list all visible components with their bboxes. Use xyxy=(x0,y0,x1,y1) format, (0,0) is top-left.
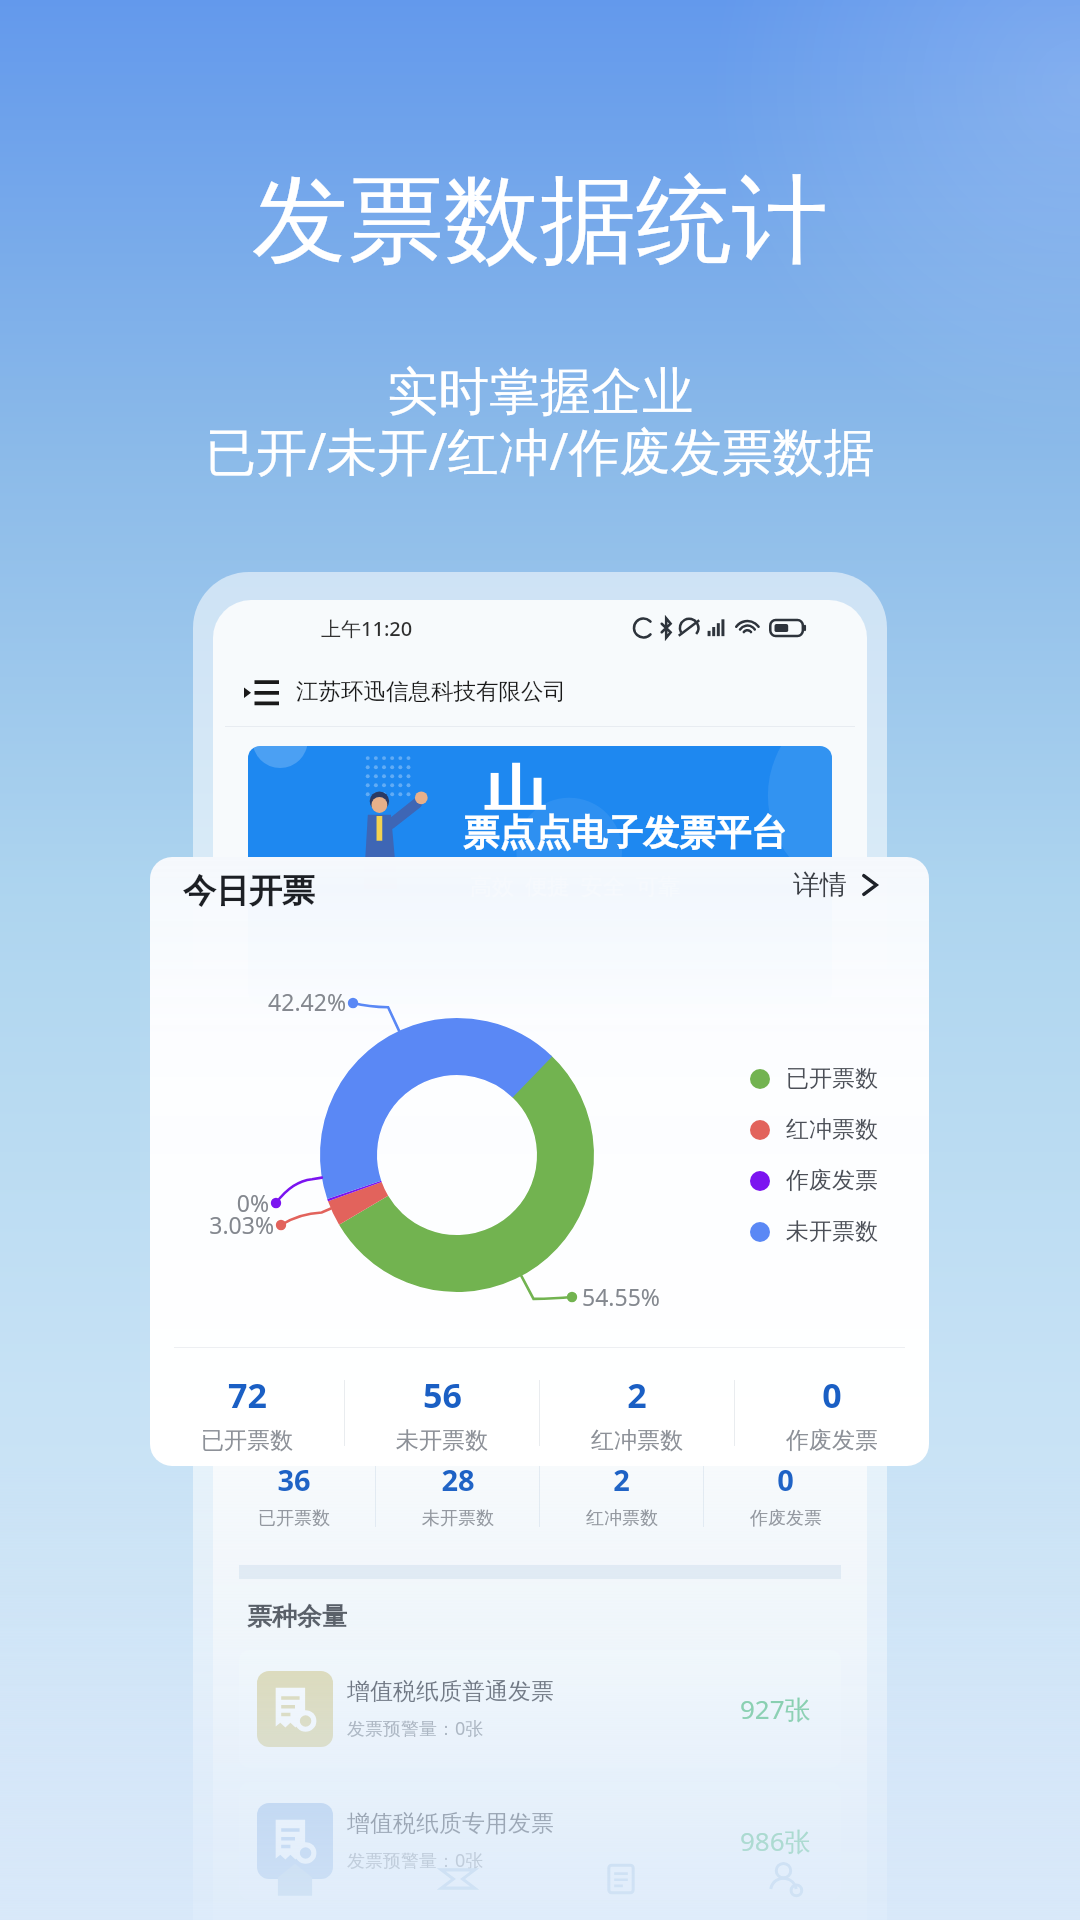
staticText: 42.42% xyxy=(150,986,346,1017)
staticText: 已开票数 xyxy=(258,1507,330,1530)
staticText: 0% xyxy=(150,1187,269,1218)
button[interactable]: 红冲票数 xyxy=(750,1104,878,1155)
button[interactable]: 36 xyxy=(213,1443,375,1547)
staticText: 实时掌握企业 已开/未开/红冲/作废发票数据 xyxy=(0,360,1080,485)
staticText: 票点点电子发票平台 xyxy=(463,810,787,855)
staticText: 详情 xyxy=(793,868,847,902)
staticText: 上午11:20 xyxy=(321,615,413,642)
staticText: 未开票数 xyxy=(396,1426,488,1455)
staticText: 增值税纸质专用发票 xyxy=(347,1809,554,1838)
staticText: 红冲票数 xyxy=(786,1115,878,1144)
button[interactable]: Records xyxy=(539,1838,703,1920)
button[interactable]: 未开票数 xyxy=(750,1206,878,1257)
button[interactable]: Menu xyxy=(244,656,839,726)
staticText: 作废发票 xyxy=(786,1426,878,1455)
staticText: 发票预警量：0张 xyxy=(347,1716,484,1741)
button[interactable]: 增值税纸质专用发票 xyxy=(239,1782,841,1900)
button[interactable]: 票点点电子发票平台 xyxy=(248,746,832,1004)
staticText: 3.03% xyxy=(150,1209,274,1240)
button[interactable]: 2 xyxy=(540,1360,734,1466)
staticText: 927张 xyxy=(740,1691,811,1727)
button[interactable]: 详情 xyxy=(793,868,883,902)
staticText: 0 xyxy=(777,1460,794,1499)
staticText: 发票数据统计 xyxy=(0,161,1080,282)
button[interactable]: Home xyxy=(213,1838,376,1920)
staticText: 54.55% xyxy=(582,1281,660,1312)
staticText: 票种余量 xyxy=(247,1601,347,1632)
button[interactable]: 2 xyxy=(540,1443,703,1547)
staticText: 28 xyxy=(441,1460,475,1499)
button[interactable]: 72 xyxy=(150,1360,344,1466)
staticText: 作废发票 xyxy=(750,1507,822,1530)
staticText: 今日开票 xyxy=(183,870,315,912)
staticText: 作废发票 xyxy=(786,1166,878,1195)
staticText: 红冲票数 xyxy=(586,1507,658,1530)
staticText: 未开票数 xyxy=(422,1507,494,1530)
button[interactable]: Tickets xyxy=(376,1838,539,1920)
staticText: 0 xyxy=(822,1372,842,1418)
staticText: 已开票数 xyxy=(786,1064,878,1093)
staticText: 986张 xyxy=(740,1823,811,1859)
staticText: 2 xyxy=(627,1372,647,1418)
staticText: 72 xyxy=(228,1372,267,1418)
staticText: 已开票数 xyxy=(201,1426,293,1455)
button[interactable]: 增值税纸质普通发票 xyxy=(239,1650,841,1768)
staticText: 56 xyxy=(423,1372,462,1418)
button[interactable]: 0 xyxy=(704,1443,867,1547)
staticText: 2 xyxy=(613,1460,630,1499)
other: Menu xyxy=(244,679,279,704)
button[interactable]: 作废发票 xyxy=(750,1155,878,1206)
staticText: 红冲票数 xyxy=(591,1426,683,1455)
button[interactable]: 0 xyxy=(735,1360,929,1466)
button[interactable]: 56 xyxy=(345,1360,539,1466)
staticText: 增值税纸质普通发票 xyxy=(347,1677,554,1706)
button[interactable]: 28 xyxy=(376,1443,539,1547)
staticText: 36 xyxy=(277,1460,311,1499)
staticText: 发票预警量：0张 xyxy=(347,1848,484,1873)
button[interactable]: Profile xyxy=(703,1838,867,1920)
staticText: 江苏环迅信息科技有限公司 xyxy=(296,677,566,705)
button[interactable]: 已开票数 xyxy=(750,1053,878,1104)
staticText: 未开票数 xyxy=(786,1217,878,1246)
